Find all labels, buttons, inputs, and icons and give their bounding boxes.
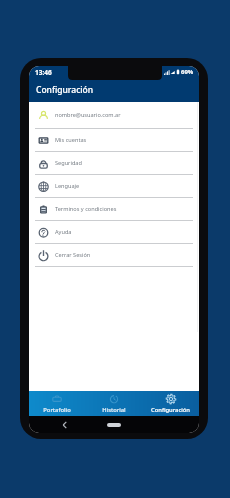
staticText: Portafolio xyxy=(43,406,71,414)
button[interactable]: Ayuda xyxy=(29,221,199,243)
staticText: Terminos y condiciones xyxy=(55,205,117,213)
staticText: nombre@usuario.com.ar xyxy=(55,111,121,119)
staticText: 13:46 xyxy=(35,68,52,77)
button[interactable]: Mis cuentas xyxy=(29,129,199,151)
staticText: Configuración xyxy=(151,406,190,414)
button[interactable]: nombre@usuario.com.ar xyxy=(29,102,199,128)
button[interactable]: Back xyxy=(59,420,69,430)
button[interactable]: Portafolio xyxy=(29,391,85,416)
button[interactable]: Lenguaje xyxy=(29,175,199,197)
button[interactable]: Seguridad xyxy=(29,152,199,174)
staticText: Mis cuentas xyxy=(55,136,87,144)
staticText: Seguridad xyxy=(55,159,82,167)
staticText: 69% xyxy=(181,68,194,76)
staticText: Historial xyxy=(102,406,126,414)
button[interactable]: Historial xyxy=(85,391,142,416)
button[interactable]: Home xyxy=(107,423,121,427)
staticText: Cerrar Sesión xyxy=(55,251,91,259)
staticText: Ayuda xyxy=(55,228,72,236)
staticText: Lenguaje xyxy=(55,182,80,190)
button[interactable]: Cerrar Sesión xyxy=(29,244,199,266)
button[interactable]: Terminos y condiciones xyxy=(29,198,199,220)
staticText: Configuración xyxy=(36,84,94,96)
button[interactable]: Configuración xyxy=(142,391,199,416)
